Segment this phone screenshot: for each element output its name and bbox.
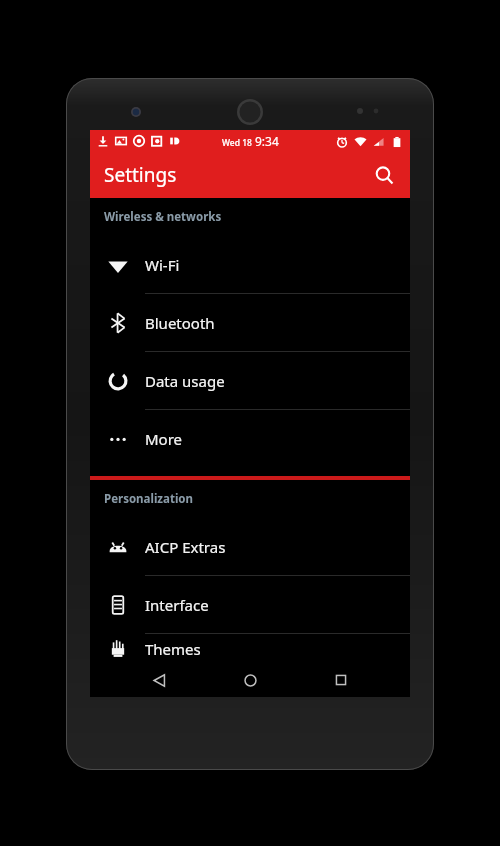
button[interactable]: Data usage <box>90 352 410 410</box>
staticText: Bluetooth <box>145 313 215 333</box>
button[interactable]: More <box>90 410 410 468</box>
staticText: Wi-Fi <box>145 255 180 275</box>
button[interactable]: Search <box>366 157 402 193</box>
button[interactable]: Themes <box>90 634 410 663</box>
staticText: Settings <box>104 162 177 188</box>
button[interactable]: Wi-Fi <box>90 236 410 294</box>
staticText: Wed 18 <box>222 137 252 149</box>
staticText: More <box>145 429 183 449</box>
button[interactable]: Recents <box>319 663 363 697</box>
button[interactable]: Back <box>137 663 181 697</box>
button[interactable]: Interface <box>90 576 410 634</box>
staticText: Data usage <box>145 371 225 391</box>
button[interactable]: AICP Extras <box>90 518 410 576</box>
staticText: Themes <box>145 639 201 659</box>
staticText: Interface <box>145 595 209 615</box>
staticText: Wireless & networks <box>104 209 222 225</box>
staticText: 9:34 <box>255 133 279 149</box>
button[interactable]: Home <box>228 663 272 697</box>
staticText: Personalization <box>104 491 193 507</box>
staticText: AICP Extras <box>145 537 226 557</box>
button[interactable]: Bluetooth <box>90 294 410 352</box>
